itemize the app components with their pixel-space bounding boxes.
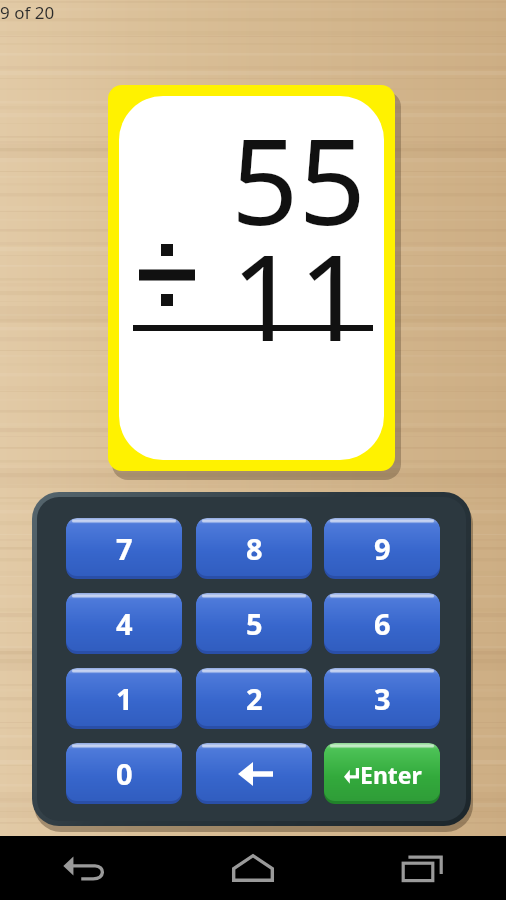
button[interactable]: Backspace	[196, 743, 312, 804]
staticText: 2	[246, 679, 263, 718]
button[interactable]: 7	[66, 518, 182, 579]
staticText: 9 of 20	[0, 1, 55, 24]
staticText: 4	[116, 604, 133, 643]
staticText: 5	[246, 604, 263, 643]
button[interactable]: 5	[196, 593, 312, 654]
button[interactable]: 0	[66, 743, 182, 804]
staticText: 0	[116, 754, 133, 793]
button[interactable]: 9	[324, 518, 440, 579]
staticText: 3	[374, 679, 391, 718]
button[interactable]: Back	[0, 836, 168, 900]
button[interactable]: Home	[168, 836, 337, 900]
button[interactable]: 1	[66, 668, 182, 729]
button[interactable]: 3	[324, 668, 440, 729]
staticText: 7	[116, 529, 133, 568]
button[interactable]: 55	[108, 85, 399, 476]
staticText: Enter	[360, 759, 422, 790]
button[interactable]: 2	[196, 668, 312, 729]
button[interactable]: Enter	[324, 743, 440, 804]
button[interactable]: 4	[66, 593, 182, 654]
staticText: 1	[116, 679, 133, 718]
button[interactable]: 6	[324, 593, 440, 654]
staticText: 55	[138, 99, 366, 260]
button[interactable]: Recent apps	[337, 836, 506, 900]
staticText: 9	[374, 529, 391, 568]
staticText: 11	[138, 215, 366, 376]
staticText: 8	[246, 529, 263, 568]
button[interactable]: 8	[196, 518, 312, 579]
staticText: 6	[374, 604, 391, 643]
